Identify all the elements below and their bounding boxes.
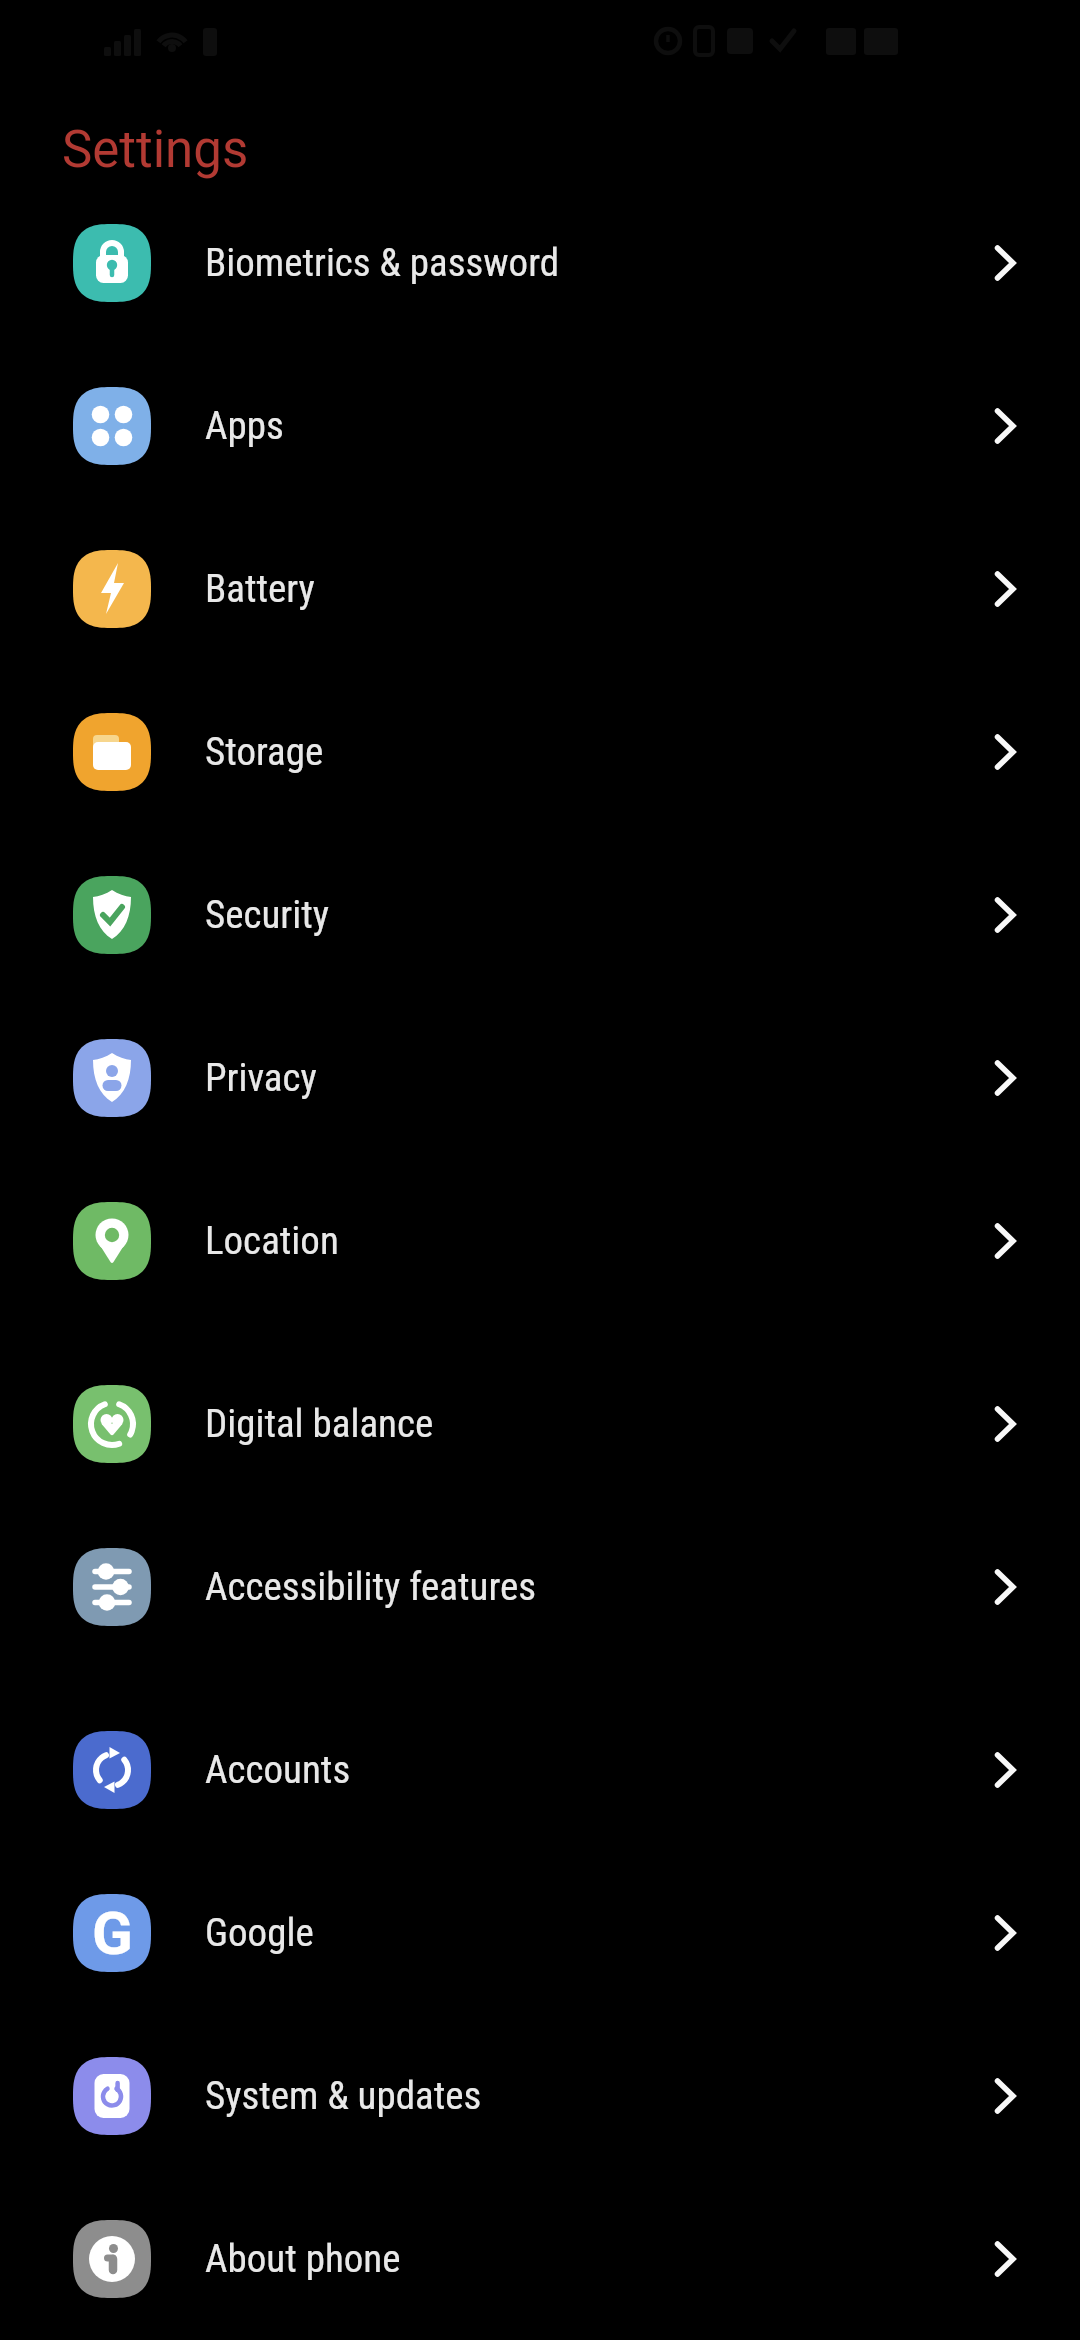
button[interactable]: Apps [0,344,1080,507]
staticText: Settings [62,120,249,180]
staticText: Accessibility features [205,1564,536,1610]
staticText: Location [205,1218,339,1264]
button[interactable]: Accessibility features [0,1505,1080,1668]
staticText: Battery [205,566,315,612]
button[interactable]: Security [0,833,1080,996]
button[interactable]: Biometrics & password [0,181,1080,344]
staticText: G [92,1898,133,1968]
button[interactable]: Battery [0,507,1080,670]
button[interactable]: Digital balance [0,1342,1080,1505]
button[interactable]: Storage [0,670,1080,833]
staticText: Digital balance [205,1401,434,1447]
button[interactable]: About phone [0,2177,1080,2340]
button[interactable]: System & updates [0,2014,1080,2177]
button[interactable]: Privacy [0,996,1080,1159]
staticText: Biometrics & password [205,240,560,286]
staticText: Privacy [205,1055,317,1101]
staticText: Accounts [205,1747,351,1793]
staticText: Apps [205,403,284,449]
staticText: Security [205,892,329,938]
staticText: Google [205,1910,314,1956]
staticText: About phone [205,2236,401,2282]
button[interactable]: Location [0,1159,1080,1322]
button[interactable]: Accounts [0,1688,1080,1851]
staticText: System & updates [205,2073,482,2119]
button[interactable]: G [0,1851,1080,2014]
staticText: Storage [205,729,324,775]
